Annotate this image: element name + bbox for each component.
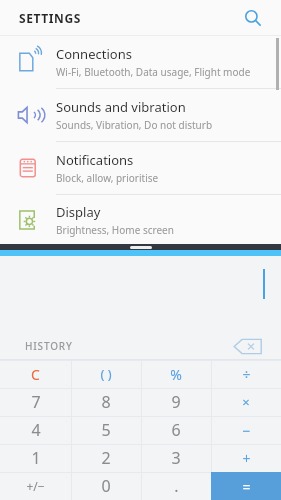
staticText: ÷	[242, 365, 251, 384]
staticText: HISTORY	[25, 339, 73, 353]
staticText: ×	[242, 393, 250, 411]
button[interactable]: ×	[211, 388, 281, 416]
staticText: 3	[171, 447, 181, 469]
button[interactable]: 9	[141, 388, 211, 416]
button[interactable]: Sounds and vibration	[0, 89, 281, 141]
button[interactable]: Backspace	[229, 335, 267, 357]
button[interactable]: +	[211, 444, 281, 472]
staticText: Display	[56, 203, 101, 221]
button[interactable]: ÷	[211, 360, 281, 388]
staticText: Notifications	[56, 151, 134, 169]
button[interactable]: Search	[237, 2, 269, 34]
button[interactable]: 0	[71, 472, 141, 500]
staticText: 7	[31, 391, 41, 413]
staticText: +/−	[26, 478, 45, 494]
button[interactable]: C	[0, 360, 71, 388]
staticText: −	[242, 421, 251, 440]
staticText: SETTINGS	[19, 10, 81, 26]
staticText: 4	[31, 419, 41, 441]
staticText: C	[31, 365, 40, 384]
button[interactable]: =	[211, 472, 281, 500]
staticText: %	[170, 365, 182, 384]
staticText: Sounds and vibration	[56, 98, 186, 116]
button[interactable]: −	[211, 416, 281, 444]
staticText: 5	[101, 419, 111, 441]
button[interactable]: 2	[71, 444, 141, 472]
button[interactable]: 8	[71, 388, 141, 416]
button[interactable]: 1	[0, 444, 71, 472]
button[interactable]: ( )	[71, 360, 141, 388]
staticText: Connections	[56, 45, 132, 63]
staticText: 6	[171, 419, 181, 441]
button[interactable]: Display	[0, 195, 281, 244]
staticText: 0	[101, 475, 111, 497]
button[interactable]: 7	[0, 388, 71, 416]
button[interactable]: .	[141, 472, 211, 500]
button[interactable]: 6	[141, 416, 211, 444]
staticText: =	[242, 477, 251, 496]
button[interactable]: +/−	[0, 472, 71, 500]
staticText: .	[174, 475, 179, 497]
button[interactable]: Notifications	[0, 142, 281, 194]
staticText: Block, allow, prioritise	[56, 171, 159, 185]
staticText: Wi-Fi, Bluetooth, Data usage, Flight mod…	[56, 65, 251, 79]
staticText: 1	[31, 447, 41, 469]
button[interactable]: Connections	[0, 36, 281, 88]
staticText: 9	[171, 391, 181, 413]
staticText: Sounds, Vibration, Do not disturb	[56, 118, 213, 132]
staticText: Brightness, Home screen	[56, 223, 174, 237]
staticText: +	[242, 449, 251, 468]
staticText: ( )	[100, 365, 112, 383]
button[interactable]: 5	[71, 416, 141, 444]
button[interactable]: 4	[0, 416, 71, 444]
button[interactable]: 3	[141, 444, 211, 472]
button[interactable]: %	[141, 360, 211, 388]
staticText: 2	[101, 447, 111, 469]
staticText: 8	[101, 391, 111, 413]
